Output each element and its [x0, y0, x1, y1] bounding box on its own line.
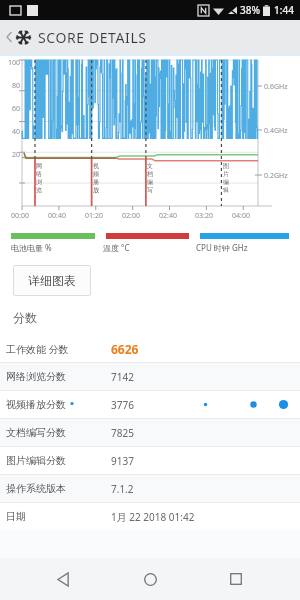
staticText: 40	[1, 127, 20, 137]
staticText: 电池电量 %	[11, 242, 103, 253]
button[interactable]: 操作系统版本	[0, 475, 300, 502]
button[interactable]: Back	[42, 558, 86, 600]
staticText: 分数	[13, 310, 37, 325]
staticText: 详细图表	[28, 273, 76, 288]
staticText: 片	[223, 170, 229, 178]
staticText: 视频播放分数	[6, 398, 111, 411]
staticText: 02:00	[122, 211, 140, 221]
staticText: 频	[93, 170, 99, 178]
staticText: SCORE DETAILS	[38, 28, 147, 47]
staticText: 38%	[240, 3, 260, 17]
staticText: 7142	[111, 370, 134, 384]
staticText: 0.4GHz	[264, 126, 288, 136]
staticText: 温度 °C	[103, 242, 196, 253]
button[interactable]: 工作效能 分数	[0, 335, 300, 362]
other: Back	[4, 28, 14, 46]
staticText: 03:20	[195, 211, 213, 221]
button[interactable]: Recents	[214, 558, 258, 600]
staticText: 80	[1, 81, 20, 91]
staticText: 100	[1, 58, 20, 68]
staticText: 图片编辑分数	[6, 454, 111, 467]
staticText: 20	[1, 150, 20, 160]
staticText: 1:44	[274, 3, 294, 17]
staticText: 00:00	[11, 211, 29, 221]
button[interactable]: 图片编辑分数	[0, 447, 300, 474]
staticText: 1月 22 2018 01:42	[111, 510, 195, 524]
staticText: 00:40	[48, 211, 66, 221]
button[interactable]: Home	[128, 558, 172, 600]
staticText: 播	[93, 178, 99, 186]
staticText: 工作效能 分数	[6, 342, 111, 356]
button[interactable]: 日期	[0, 503, 300, 530]
staticText: 7825	[111, 426, 134, 440]
button[interactable]: 文档编写分数	[0, 419, 300, 446]
staticText: 60	[1, 104, 20, 114]
button[interactable]: 详细图表	[13, 265, 91, 296]
staticText: 编	[223, 178, 229, 186]
button[interactable]: 视频播放分数	[0, 391, 300, 418]
staticText: 操作系统版本	[6, 482, 111, 495]
staticText: 编	[147, 178, 153, 186]
staticText: 0.6GHz	[264, 82, 288, 92]
staticText: 9137	[111, 454, 134, 468]
staticText: 写	[147, 186, 153, 194]
staticText: CPU 时钟 GHz	[196, 242, 289, 253]
staticText: 视	[93, 162, 99, 170]
staticText: 络	[36, 170, 42, 178]
button[interactable]: Back	[0, 20, 300, 54]
staticText: 文	[147, 162, 153, 170]
staticText: 0.2GHz	[264, 171, 288, 181]
staticText: 02:40	[159, 211, 177, 221]
staticText: 3776	[111, 398, 134, 412]
button[interactable]: 网络浏览分数	[0, 363, 300, 390]
staticText: 文档编写分数	[6, 426, 111, 439]
staticText: 04:00	[232, 211, 250, 221]
staticText: 网	[36, 162, 42, 170]
staticText: 图	[223, 162, 229, 170]
staticText: 辑	[223, 186, 229, 194]
staticText: 01:20	[85, 211, 103, 221]
staticText: 览	[36, 186, 42, 194]
staticText: 网络浏览分数	[6, 370, 111, 383]
staticText: 7.1.2	[111, 482, 134, 496]
staticText: 6626	[111, 341, 139, 357]
staticText: 日期	[6, 510, 111, 523]
staticText: 浏	[36, 178, 42, 186]
staticText: 档	[147, 170, 153, 178]
staticText: 放	[93, 186, 99, 194]
